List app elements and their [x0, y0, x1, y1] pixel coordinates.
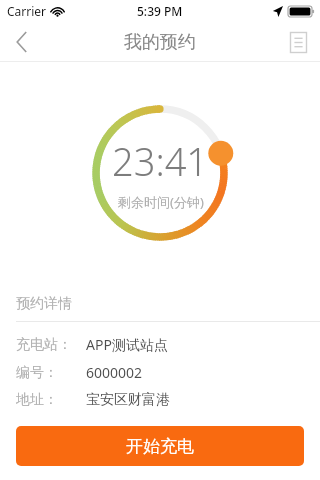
staticText: 剩余时间(分钟) — [118, 193, 204, 211]
staticText: APP测试站点 — [86, 335, 168, 354]
staticText: 我的预约 — [124, 31, 196, 54]
staticText: Carrier — [7, 3, 47, 19]
staticText: 5:39 PM — [137, 3, 183, 19]
button[interactable]: 返回 — [0, 22, 44, 62]
staticText: 充电站： — [16, 336, 72, 354]
staticText: 开始充电 — [126, 436, 194, 457]
staticText: 23:41 — [112, 135, 209, 187]
button[interactable]: 订单列表 — [276, 22, 320, 62]
staticText: 预约详情 — [16, 295, 72, 313]
staticText: 编号： — [16, 364, 58, 382]
staticText: 地址： — [16, 391, 58, 409]
staticText: 6000002 — [86, 363, 143, 382]
button[interactable]: 开始充电 — [16, 426, 304, 466]
staticText: 宝安区财富港 — [86, 391, 170, 409]
